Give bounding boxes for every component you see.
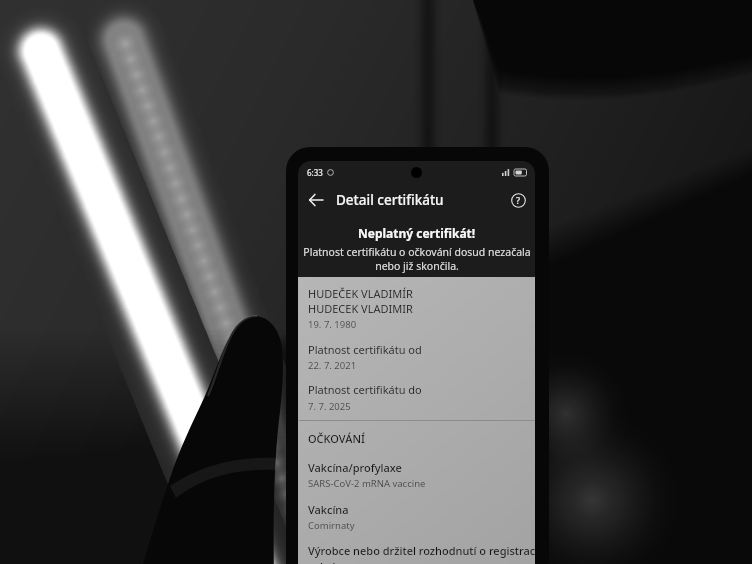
- staticText: HUDEČEK VLADIMÍR: [308, 286, 413, 301]
- staticText: HUDECEK VLADIMIR: [308, 301, 413, 316]
- staticText: Vakcína: [308, 502, 349, 517]
- staticText: Platnost certifikátu do: [308, 382, 422, 397]
- staticText: OČKOVÁNÍ: [308, 431, 365, 446]
- staticText: 22. 7. 2021: [308, 359, 357, 372]
- staticText: Detail certifikátu: [336, 191, 444, 209]
- button[interactable]: Help: [506, 188, 530, 212]
- staticText: Comirnaty: [308, 519, 355, 532]
- staticText: vakcíny: [308, 559, 348, 564]
- staticText: ?: [516, 194, 521, 206]
- staticText: Platnost certifikátu o očkování dosud ne…: [303, 245, 531, 259]
- staticText: 6:33: [307, 167, 323, 178]
- staticText: Vakcína/profylaxe: [308, 460, 402, 475]
- staticText: 19. 7. 1980: [308, 318, 357, 331]
- staticText: nebo již skončila.: [375, 259, 459, 273]
- staticText: 7. 7. 2025: [308, 400, 351, 413]
- staticText: Platnost certifikátu od: [308, 342, 422, 357]
- staticText: Neplatný certifikát!: [358, 225, 476, 241]
- button[interactable]: Back: [303, 187, 329, 213]
- staticText: Výrobce nebo držitel rozhodnutí o regist…: [308, 543, 535, 558]
- staticText: SARS-CoV-2 mRNA vaccine: [308, 477, 426, 490]
